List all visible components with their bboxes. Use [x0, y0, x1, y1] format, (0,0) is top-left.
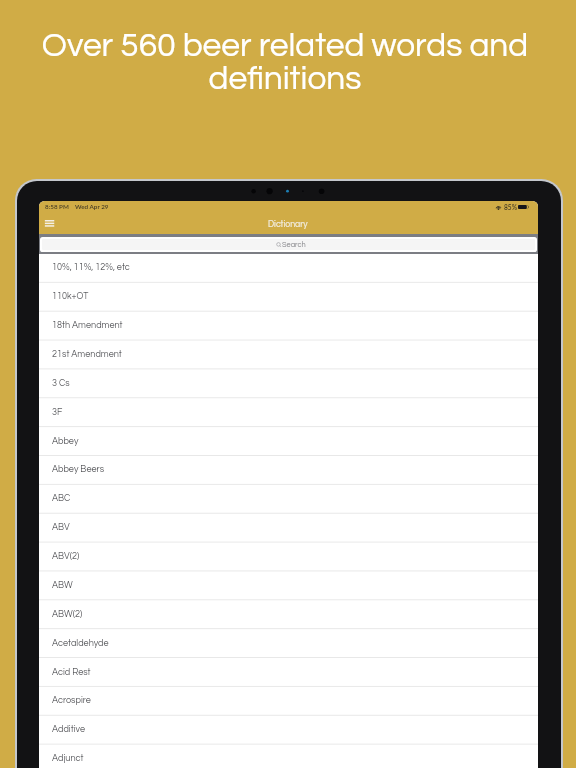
- button[interactable]: 3 Cs: [39, 369, 538, 398]
- staticText: Acetaldehyde: [52, 639, 109, 648]
- staticText: Abbey: [52, 437, 79, 446]
- staticText: 3 Cs: [52, 379, 70, 388]
- staticText: 21st Amendment: [52, 350, 122, 359]
- button[interactable]: Acetaldehyde: [39, 629, 538, 658]
- staticText: ABV(2): [52, 552, 80, 561]
- button[interactable]: ABV: [39, 513, 538, 542]
- staticText: 18th Amendment: [52, 321, 123, 330]
- staticText: ABV: [52, 523, 70, 532]
- staticText: Acrospire: [52, 696, 91, 705]
- button[interactable]: Acrospire: [39, 686, 538, 715]
- button[interactable]: ABC: [39, 484, 538, 513]
- button[interactable]: ABW: [39, 571, 538, 600]
- button[interactable]: Abbey Beers: [39, 455, 538, 484]
- staticText: 3F: [52, 408, 63, 417]
- staticText: Search: [282, 241, 306, 249]
- staticText: Dictionary: [268, 220, 308, 229]
- button[interactable]: 10%, 11%, 12%, etc: [39, 253, 538, 282]
- staticText: Over 560 beer related words and definiti…: [33, 29, 537, 96]
- staticText: 10%, 11%, 12%, etc: [52, 263, 130, 272]
- button[interactable]: 3F: [39, 398, 538, 427]
- button[interactable]: Open navigation menu: [42, 216, 58, 232]
- staticText: Additive: [52, 725, 85, 734]
- button[interactable]: Search: [42, 239, 535, 250]
- button[interactable]: 18th Amendment: [39, 311, 538, 340]
- button[interactable]: Adjunct: [39, 744, 538, 768]
- staticText: 85%: [504, 203, 517, 211]
- button[interactable]: 110k+OT: [39, 282, 538, 311]
- staticText: 110k+OT: [52, 292, 89, 301]
- staticText: Adjunct: [52, 754, 84, 763]
- staticText: 8:58 PM Wed Apr 29: [45, 203, 109, 211]
- staticText: ABW(2): [52, 610, 83, 619]
- staticText: ABC: [52, 494, 71, 503]
- staticText: ABW: [52, 581, 73, 590]
- button[interactable]: ABV(2): [39, 542, 538, 571]
- staticText: Abbey Beers: [52, 465, 105, 474]
- button[interactable]: 21st Amendment: [39, 340, 538, 369]
- button[interactable]: Abbey: [39, 427, 538, 456]
- staticText: Acid Rest: [52, 668, 91, 677]
- button[interactable]: ABW(2): [39, 600, 538, 629]
- button[interactable]: Acid Rest: [39, 658, 538, 687]
- button[interactable]: Additive: [39, 715, 538, 744]
